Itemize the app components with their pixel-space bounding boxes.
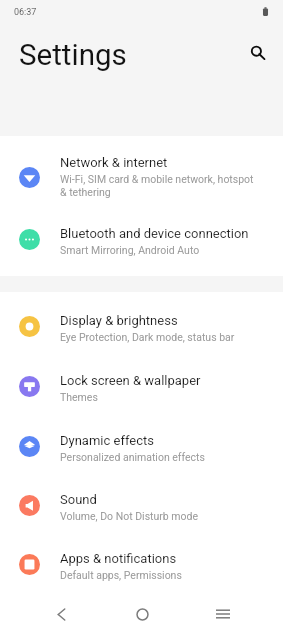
button[interactable]: Display & brightness	[0, 292, 283, 352]
button[interactable]: Lock screen & wallpaper	[0, 352, 283, 412]
staticText: Sound	[60, 492, 97, 507]
staticText: Volume, Do Not Disturb mode	[60, 510, 199, 523]
button[interactable]: Apps & notifications	[0, 530, 283, 589]
staticText: 06:37	[14, 7, 37, 18]
staticText: Settings	[19, 38, 127, 73]
button[interactable]: Recent apps	[201, 592, 245, 630]
button[interactable]: Sound	[0, 471, 283, 530]
button[interactable]: Network & internet	[0, 136, 283, 205]
staticText: Personalized animation effects	[60, 451, 205, 464]
staticText: Apps & notifications	[60, 551, 177, 566]
staticText: Bluetooth and device connection	[60, 226, 249, 241]
button[interactable]: Bluetooth and device connection	[0, 205, 283, 276]
staticText: Eye Protection, Dark mode, status bar	[60, 331, 235, 344]
staticText: Smart Mirroring, Android Auto	[60, 244, 200, 257]
staticText: Display & brightness	[60, 313, 178, 328]
button[interactable]: Search	[245, 40, 271, 66]
staticText: Lock screen & wallpaper	[60, 373, 201, 388]
button[interactable]: Back	[39, 592, 83, 630]
button[interactable]: Home	[120, 592, 164, 630]
staticText: Network & internet	[60, 155, 168, 170]
button[interactable]: Dynamic effects	[0, 412, 283, 471]
staticText: Wi-Fi, SIM card & mobile network, hotspo…	[60, 173, 261, 199]
staticText: Themes	[60, 391, 98, 404]
staticText: Default apps, Permissions	[60, 569, 182, 582]
staticText: Dynamic effects	[60, 433, 154, 448]
